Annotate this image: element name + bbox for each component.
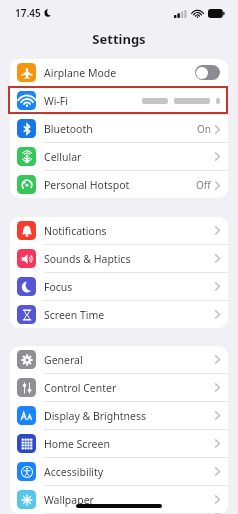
staticText: Screen Time (44, 308, 215, 322)
button[interactable]: Wallpaper (10, 486, 228, 513)
button[interactable]: Accessibility (10, 458, 228, 485)
staticText: Personal Hotspot (44, 178, 196, 192)
staticText: General (44, 353, 215, 367)
staticText: On (197, 122, 211, 136)
staticText: Settings (92, 30, 146, 48)
button[interactable]: Airplane Mode toggle, off (195, 65, 220, 80)
staticText: Display & Brightness (44, 409, 215, 423)
button[interactable]: Sounds & Haptics (10, 245, 228, 272)
staticText: Cellular (44, 150, 215, 164)
staticText: Airplane Mode (44, 66, 195, 80)
button[interactable]: Notifications (10, 217, 228, 244)
button[interactable]: Display & Brightness (10, 402, 228, 429)
staticText: Bluetooth (44, 122, 197, 136)
staticText: Control Center (44, 381, 215, 395)
staticText: Wallpaper (44, 493, 215, 507)
staticText: Wi-Fi (44, 94, 142, 108)
staticText: Accessibility (44, 465, 215, 479)
button[interactable]: Focus (10, 273, 228, 300)
button[interactable]: Wi-Fi (10, 87, 228, 114)
staticText: 17.45 (15, 6, 41, 20)
button[interactable]: Airplane Mode (10, 59, 228, 86)
button[interactable]: General (10, 346, 228, 373)
button[interactable]: Screen Time (10, 301, 228, 328)
button[interactable]: Cellular (10, 143, 228, 170)
button[interactable]: Home Screen (10, 430, 228, 457)
staticText: Focus (44, 280, 215, 294)
staticText: Off (196, 178, 211, 192)
button[interactable]: Control Center (10, 374, 228, 401)
button[interactable]: Personal Hotspot (10, 171, 228, 198)
staticText: Sounds & Haptics (44, 252, 215, 266)
button[interactable]: Bluetooth (10, 115, 228, 142)
staticText: Notifications (44, 224, 215, 238)
staticText: Home Screen (44, 437, 215, 451)
